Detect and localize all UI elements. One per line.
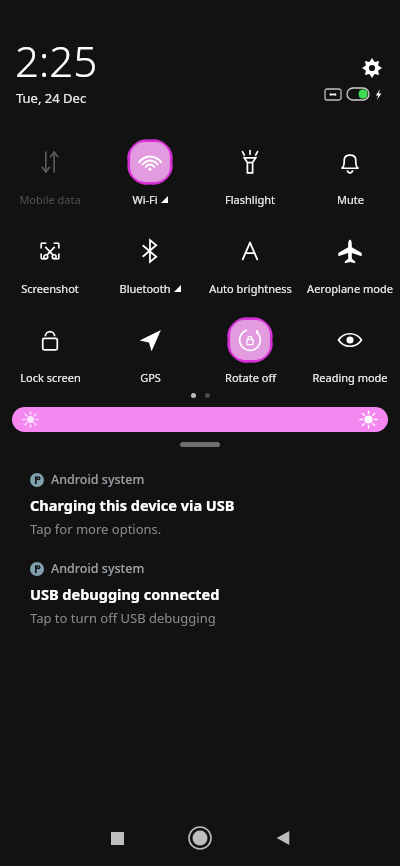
staticText: Mute	[337, 192, 364, 207]
button[interactable]: Home	[178, 816, 222, 860]
staticText: Auto brightness	[209, 281, 292, 296]
staticText: Tue, 24 Dec	[16, 89, 87, 107]
staticText: Android system	[51, 471, 145, 488]
button[interactable]: Mobile data	[0, 132, 100, 209]
staticText: Flashlight	[225, 192, 275, 207]
button[interactable]: Wi-Fi	[100, 132, 200, 209]
staticText: Mobile data	[19, 192, 81, 207]
button[interactable]: Rotate off	[200, 310, 300, 387]
button[interactable]: Aeroplane mode	[300, 221, 400, 298]
staticText: GPS	[140, 370, 161, 385]
button[interactable]: Settings	[356, 52, 388, 84]
staticText: Android system	[51, 560, 145, 577]
button[interactable]: Bluetooth	[100, 221, 200, 298]
button[interactable]: Recent apps	[95, 816, 139, 860]
button[interactable]: Android system	[0, 471, 400, 538]
button[interactable]: Flashlight	[200, 132, 300, 209]
button[interactable]: Auto brightness	[200, 221, 300, 298]
staticText: Charging this device via USB	[30, 495, 235, 515]
button[interactable]: Mute	[300, 132, 400, 209]
staticText: Lock screen	[20, 370, 81, 385]
staticText: USB debugging connected	[30, 584, 220, 604]
button[interactable]: Lock screen	[0, 310, 100, 387]
button[interactable]	[180, 442, 220, 447]
staticText: Wi-Fi	[132, 192, 158, 207]
staticText: Bluetooth	[119, 281, 171, 296]
staticText: Reading mode	[312, 370, 388, 385]
button[interactable]: Reading mode	[300, 310, 400, 387]
staticText: Tap for more options.	[30, 520, 162, 538]
button[interactable]: Back	[261, 816, 305, 860]
button[interactable]: Screenshot	[0, 221, 100, 298]
button[interactable]: Brightness	[12, 407, 388, 432]
staticText: Tap to turn off USB debugging	[30, 609, 216, 627]
staticText: Rotate off	[225, 370, 276, 385]
button[interactable]: GPS	[100, 310, 200, 387]
staticText: Aeroplane mode	[307, 281, 393, 296]
staticText: 2:25	[15, 32, 98, 89]
button[interactable]: Android system	[0, 560, 400, 627]
staticText: Screenshot	[21, 281, 79, 296]
